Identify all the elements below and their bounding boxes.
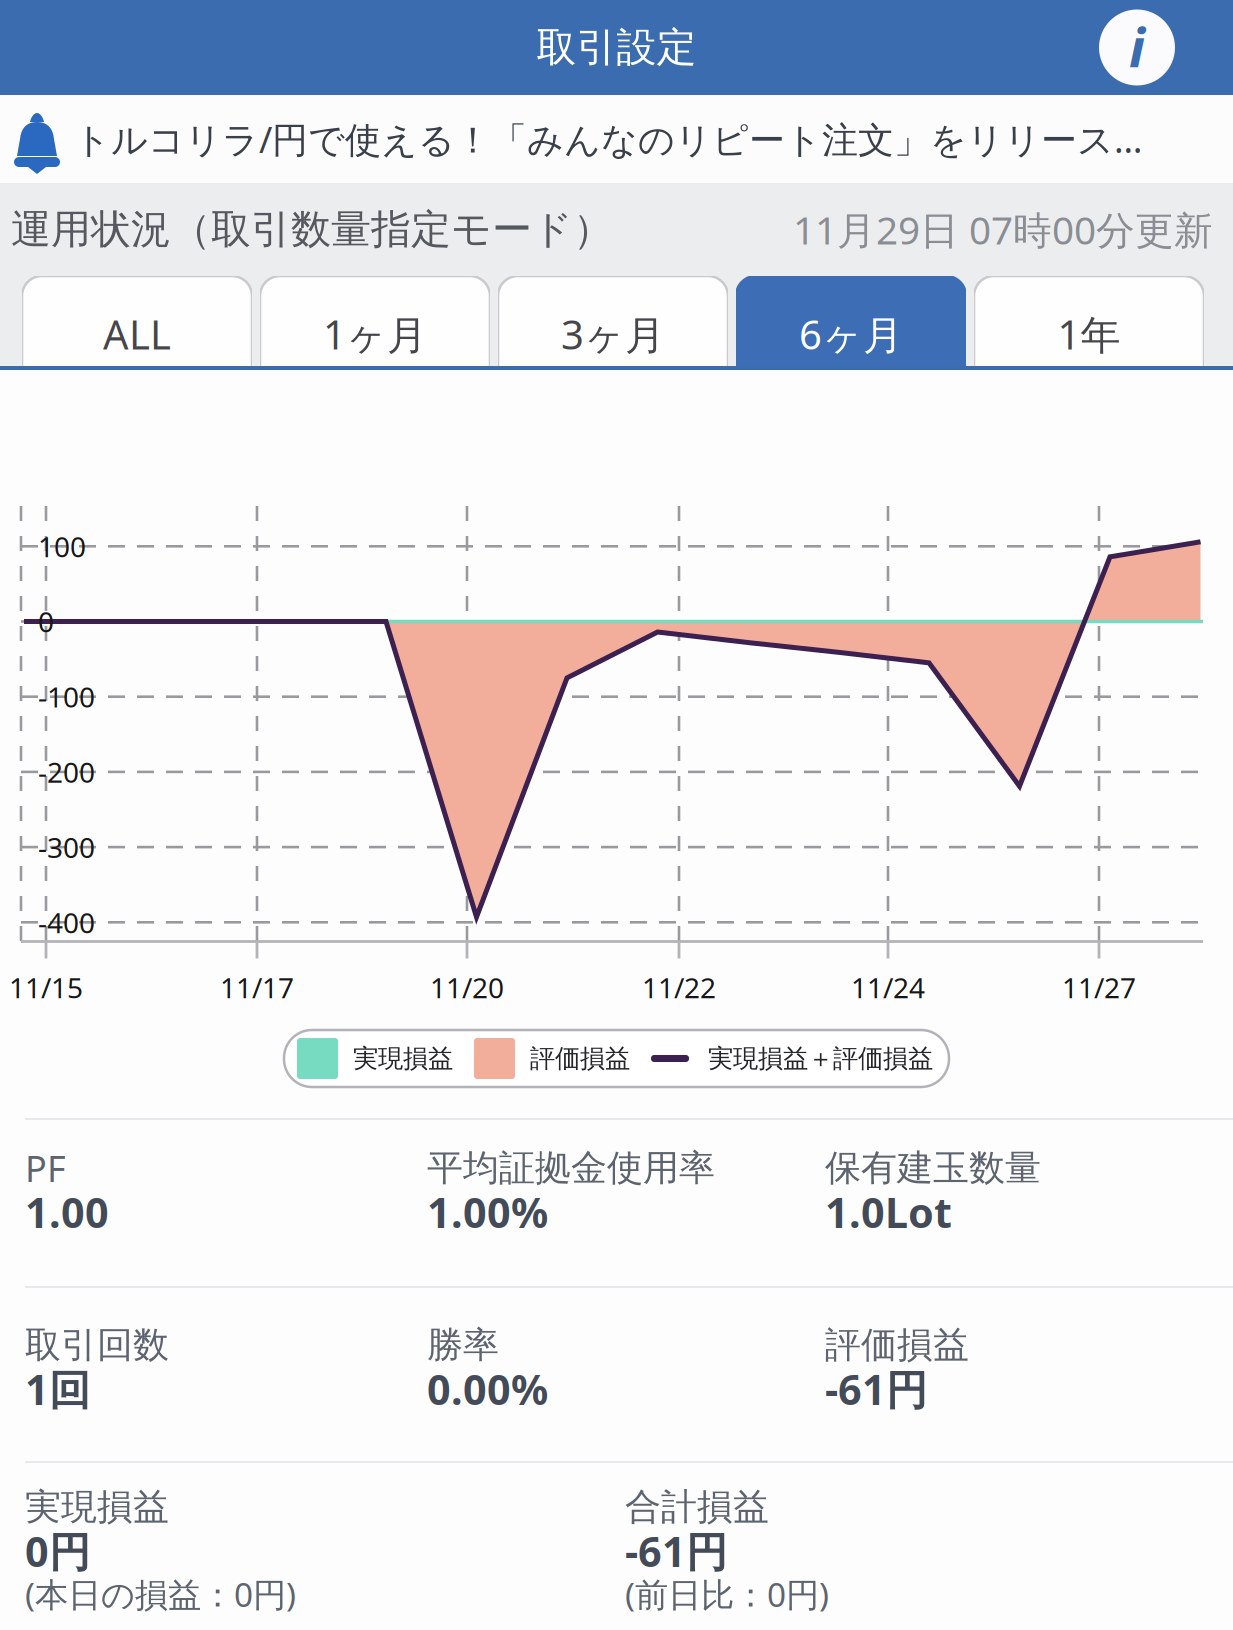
staticText: 実現損益 bbox=[25, 1484, 169, 1530]
staticText: -200 bbox=[38, 753, 95, 791]
staticText: -300 bbox=[38, 828, 95, 866]
staticText: PF bbox=[25, 1143, 66, 1192]
staticText: 1回 bbox=[25, 1361, 90, 1417]
staticText: 11/24 bbox=[851, 968, 925, 1006]
button[interactable]: 6ヶ月 bbox=[736, 276, 966, 366]
staticText: 評価損益 bbox=[825, 1322, 969, 1368]
staticText: 1.00% bbox=[427, 1184, 548, 1240]
staticText: 0円 bbox=[25, 1523, 90, 1579]
staticText: ALL bbox=[103, 307, 171, 361]
button[interactable]: 3ヶ月 bbox=[498, 276, 728, 366]
staticText: 運用状況（取引数量指定モード） bbox=[11, 204, 613, 255]
staticText: 11/15 bbox=[9, 968, 83, 1006]
staticText: 0 bbox=[38, 602, 54, 640]
staticText: 11月29日 07時00分更新 bbox=[793, 203, 1213, 256]
button[interactable]: 情報 bbox=[1091, 1, 1183, 93]
staticText: 勝率 bbox=[427, 1322, 499, 1368]
staticText: 取引回数 bbox=[25, 1322, 169, 1368]
staticText: 100 bbox=[38, 527, 86, 565]
staticText: i bbox=[1129, 10, 1145, 83]
staticText: -100 bbox=[38, 678, 95, 716]
staticText: 11/27 bbox=[1062, 968, 1136, 1006]
staticText: 11/22 bbox=[642, 968, 716, 1006]
staticText: 11/17 bbox=[220, 968, 294, 1006]
staticText: -61円 bbox=[625, 1523, 727, 1579]
staticText: 11/20 bbox=[430, 968, 504, 1006]
button[interactable]: 1ヶ月 bbox=[260, 276, 490, 366]
button[interactable]: ALL bbox=[22, 276, 252, 366]
staticText: 取引設定 bbox=[536, 22, 696, 73]
staticText: -400 bbox=[38, 903, 95, 941]
staticText: -61円 bbox=[825, 1361, 927, 1417]
staticText: トルコリラ/円で使える！「みんなのリピート注文」をリリース… bbox=[74, 114, 1142, 163]
staticText: 1.00 bbox=[25, 1184, 109, 1240]
staticText: 6ヶ月 bbox=[799, 307, 903, 361]
staticText: 1ヶ月 bbox=[323, 307, 427, 361]
staticText: (本日の損益：0円) bbox=[25, 1571, 296, 1617]
staticText: 1.0Lot bbox=[825, 1184, 952, 1240]
staticText: 3ヶ月 bbox=[561, 307, 665, 361]
staticText: 実現損益 bbox=[353, 1042, 453, 1074]
staticText: 平均証拠金使用率 bbox=[427, 1145, 715, 1191]
staticText: 実現損益＋評価損益 bbox=[708, 1042, 933, 1074]
staticText: (前日比：0円) bbox=[625, 1571, 829, 1617]
staticText: 合計損益 bbox=[625, 1484, 769, 1530]
staticText: 0.00% bbox=[427, 1361, 548, 1417]
button[interactable]: 1年 bbox=[974, 276, 1204, 366]
staticText: 評価損益 bbox=[530, 1042, 630, 1074]
staticText: 1年 bbox=[1057, 307, 1120, 361]
button[interactable]: トルコリラ/円で使える！「みんなのリピート注文」をリリース… bbox=[0, 95, 1233, 183]
staticText: 保有建玉数量 bbox=[825, 1145, 1041, 1191]
